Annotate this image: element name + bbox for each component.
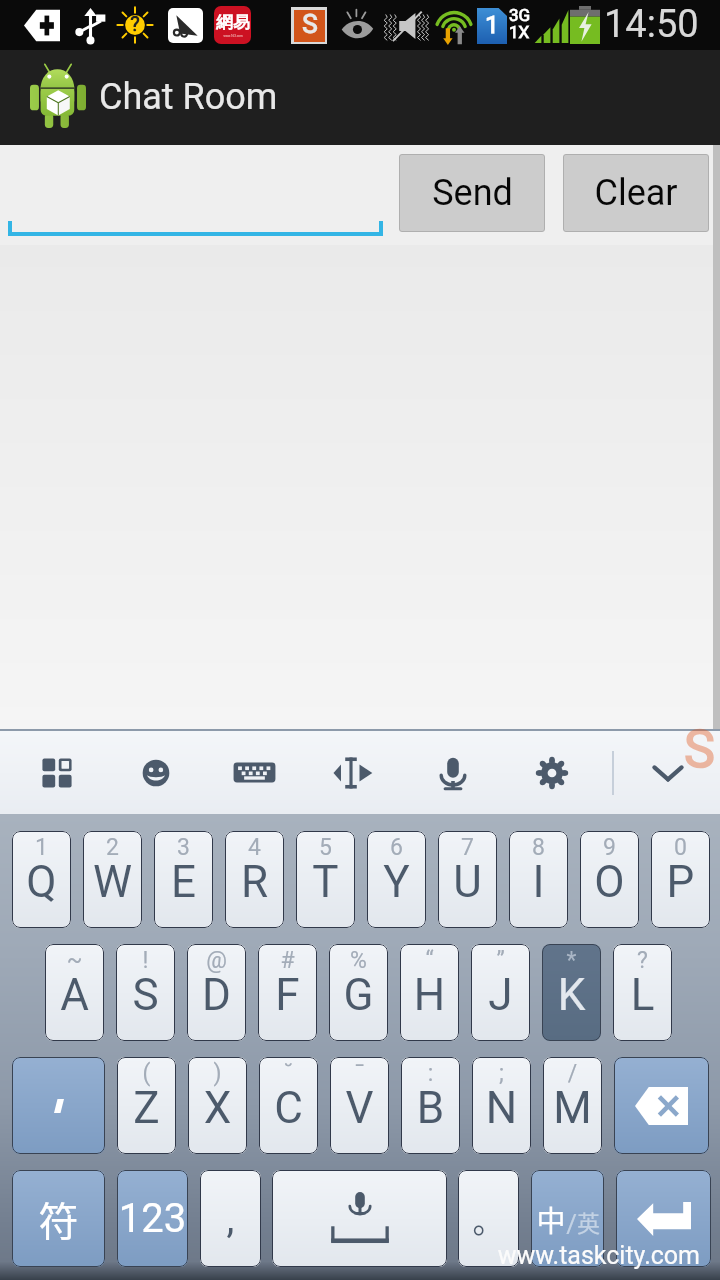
staticText: V	[330, 1082, 389, 1134]
button[interactable]: ”	[471, 944, 530, 1041]
button[interactable]: 3	[154, 831, 213, 928]
staticText: 中	[536, 1198, 566, 1240]
staticText: N	[472, 1082, 531, 1134]
staticText: /	[543, 1060, 602, 1087]
staticText: E	[154, 856, 213, 908]
staticText: H	[400, 969, 459, 1021]
button[interactable]: ˘	[259, 1057, 318, 1154]
staticText: C	[259, 1082, 318, 1134]
button[interactable]: :	[401, 1057, 460, 1154]
button[interactable]: 8	[509, 831, 568, 928]
staticText: ,	[200, 1195, 261, 1242]
staticText: ˘	[259, 1060, 318, 1087]
staticText: Send	[432, 172, 513, 214]
button[interactable]: 4	[225, 831, 284, 928]
button[interactable]: Send	[399, 154, 545, 232]
button[interactable]: ~	[45, 944, 104, 1041]
staticText: 英	[577, 1205, 600, 1238]
button[interactable]: ,	[200, 1170, 261, 1267]
staticText: L	[613, 969, 672, 1021]
button[interactable]: 。	[458, 1170, 519, 1267]
button[interactable]	[616, 1170, 711, 1267]
button[interactable]: @	[187, 944, 246, 1041]
button[interactable]: Hide keyboard	[637, 731, 698, 814]
staticText: D	[187, 969, 246, 1021]
button[interactable]: 1	[12, 831, 71, 928]
button[interactable]: Move cursor	[312, 731, 394, 814]
button[interactable]: 2	[83, 831, 142, 928]
staticText: ?	[613, 947, 672, 974]
staticText: 3G	[509, 5, 541, 25]
staticText: Q	[12, 856, 71, 908]
staticText: K	[542, 969, 601, 1021]
button[interactable]: *	[542, 944, 601, 1041]
staticText: 1	[477, 11, 507, 39]
staticText: P	[651, 856, 710, 908]
staticText: Y	[367, 856, 426, 908]
button[interactable]	[12, 1057, 105, 1154]
staticText: 5	[296, 834, 355, 861]
staticText: ;	[472, 1060, 531, 1087]
staticText: S	[116, 969, 175, 1021]
staticText: ˉ	[330, 1060, 389, 1087]
staticText: 6	[367, 834, 426, 861]
button[interactable]: 中	[531, 1170, 604, 1267]
staticText: !	[116, 947, 175, 974]
staticText: ”	[471, 947, 530, 974]
staticText: @	[187, 947, 246, 974]
button[interactable]: Clear	[563, 154, 709, 232]
staticText: 0	[651, 834, 710, 861]
button[interactable]	[614, 1057, 709, 1154]
staticText: www.163.com	[223, 34, 243, 38]
staticText: A	[45, 969, 104, 1021]
button[interactable]: /	[543, 1057, 602, 1154]
staticText: 1X	[509, 22, 541, 42]
staticText: 7	[438, 834, 497, 861]
button[interactable]: Apps	[17, 731, 96, 814]
staticText: :	[401, 1060, 460, 1087]
staticText: (	[117, 1060, 176, 1087]
button[interactable]	[272, 1170, 447, 1267]
button[interactable]: )	[188, 1057, 247, 1154]
button[interactable]: (	[117, 1057, 176, 1154]
button[interactable]: 123	[117, 1170, 188, 1267]
button[interactable]	[8, 149, 383, 236]
staticText: *	[542, 947, 601, 974]
button[interactable]: “	[400, 944, 459, 1041]
button[interactable]: Keyboard layout	[213, 731, 296, 814]
button[interactable]: 符	[12, 1170, 105, 1267]
staticText: 9	[580, 834, 639, 861]
staticText: ~	[45, 947, 104, 974]
button[interactable]: ?	[613, 944, 672, 1041]
button[interactable]: Emoji	[118, 731, 194, 814]
button[interactable]: 0	[651, 831, 710, 928]
staticText: I	[509, 856, 568, 908]
button[interactable]: Settings	[512, 731, 591, 814]
staticText: www.taskcity.com	[400, 1241, 700, 1270]
button[interactable]: !	[116, 944, 175, 1041]
staticText: O	[580, 856, 639, 908]
button[interactable]: 6	[367, 831, 426, 928]
button[interactable]: 5	[296, 831, 355, 928]
button[interactable]: ˉ	[330, 1057, 389, 1154]
staticText: #	[258, 947, 317, 974]
staticText: R	[225, 856, 284, 908]
button[interactable]: 7	[438, 831, 497, 928]
staticText: 14:50	[604, 2, 704, 47]
staticText: G	[329, 969, 388, 1021]
staticText: Chat Room	[99, 76, 399, 118]
button[interactable]: ;	[472, 1057, 531, 1154]
staticText: Z	[117, 1082, 176, 1134]
staticText: S	[684, 719, 720, 780]
staticText: X	[188, 1082, 247, 1134]
staticText: /	[566, 1209, 577, 1239]
button[interactable]: #	[258, 944, 317, 1041]
button[interactable]: Voice input	[411, 731, 494, 814]
button[interactable]: %	[329, 944, 388, 1041]
staticText: W	[83, 856, 142, 908]
staticText: 3	[154, 834, 213, 861]
staticText: %	[329, 947, 388, 974]
staticText: 1	[12, 834, 71, 861]
staticText: 。	[458, 1196, 519, 1242]
button[interactable]: 9	[580, 831, 639, 928]
